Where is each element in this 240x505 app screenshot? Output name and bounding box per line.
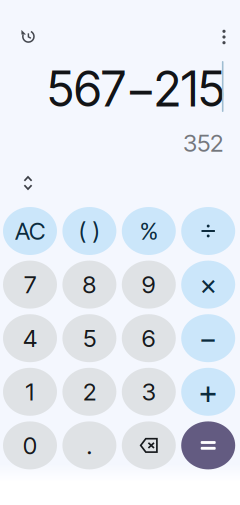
button[interactable]: 4: [3, 314, 57, 362]
staticText: −: [199, 320, 217, 356]
staticText: 8: [82, 270, 96, 299]
staticText: 7: [24, 270, 36, 299]
staticText: AC: [15, 216, 45, 245]
staticText: +: [198, 372, 218, 411]
button[interactable]: AC: [3, 207, 57, 255]
staticText: 3: [142, 377, 156, 406]
staticText: 6: [142, 324, 156, 353]
staticText: 0: [23, 431, 37, 460]
button[interactable]: 2: [62, 368, 116, 416]
staticText: %: [140, 216, 158, 245]
staticText: 5: [83, 324, 96, 353]
button[interactable]: More options: [202, 15, 240, 59]
button[interactable]: +: [181, 368, 235, 416]
staticText: ( ): [78, 216, 100, 245]
button[interactable]: ×: [181, 261, 235, 309]
button[interactable]: 7: [3, 261, 57, 309]
staticText: ×: [200, 268, 217, 302]
button[interactable]: Backspace: [122, 421, 176, 469]
button[interactable]: ( ): [62, 207, 116, 255]
button[interactable]: −: [181, 314, 235, 362]
button[interactable]: 8: [62, 261, 116, 309]
staticText: 352: [183, 128, 223, 157]
button[interactable]: 5: [62, 314, 116, 362]
button[interactable]: Expand: [10, 168, 46, 198]
staticText: 1: [25, 377, 34, 406]
button[interactable]: %: [122, 207, 176, 255]
button[interactable]: Divide: [181, 207, 235, 255]
button[interactable]: 0: [3, 421, 57, 469]
button[interactable]: 6: [122, 314, 176, 362]
staticText: 567−215: [47, 60, 225, 118]
staticText: 4: [23, 324, 37, 353]
button[interactable]: Equals: [181, 421, 235, 469]
staticText: 2: [83, 377, 96, 406]
button[interactable]: History: [6, 14, 50, 58]
button[interactable]: 3: [122, 368, 176, 416]
button[interactable]: 9: [122, 261, 176, 309]
staticText: 9: [142, 270, 156, 299]
button[interactable]: .: [62, 421, 116, 469]
button[interactable]: 1: [3, 368, 57, 416]
staticText: .: [86, 431, 92, 460]
